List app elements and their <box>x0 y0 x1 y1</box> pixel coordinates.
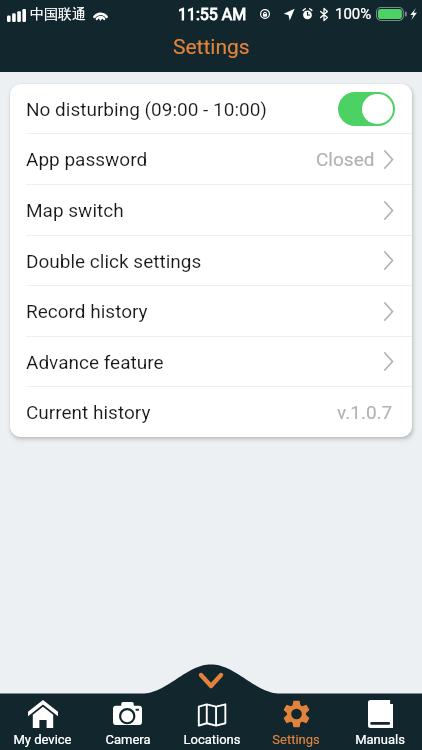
staticText: Camera <box>105 732 151 747</box>
button[interactable]: Settings <box>254 697 338 750</box>
staticText: Closed <box>316 148 375 170</box>
button[interactable]: Locations <box>170 697 254 750</box>
button[interactable]: Camera <box>85 697 170 750</box>
staticText: v.1.0.7 <box>337 401 393 423</box>
button[interactable]: My device <box>0 697 85 750</box>
button[interactable]: Map switch <box>10 185 412 235</box>
staticText: No disturbing (09:00 - 10:00) <box>26 98 267 120</box>
button[interactable]: Advance feature <box>10 337 412 386</box>
staticText: Record history <box>26 300 148 322</box>
other: Do not disturb toggle <box>338 92 395 126</box>
staticText: Manuals <box>355 732 405 747</box>
staticText: 中国联通 <box>30 6 86 24</box>
staticText: Settings <box>272 732 320 747</box>
button[interactable]: No disturbing (09:00 - 10:00) <box>10 84 412 133</box>
staticText: Locations <box>183 732 241 747</box>
staticText: My device <box>13 732 72 747</box>
staticText: Advance feature <box>26 351 164 373</box>
staticText: 11:55 AM <box>178 5 247 24</box>
staticText: Map switch <box>26 199 124 221</box>
button[interactable]: App password <box>10 134 412 184</box>
staticText: 100% <box>335 5 372 23</box>
button[interactable]: Record history <box>10 286 412 336</box>
button[interactable]: Double click settings <box>10 236 412 285</box>
button[interactable]: Current history <box>10 387 412 437</box>
button[interactable]: Manuals <box>338 697 422 750</box>
staticText: Double click settings <box>26 250 202 272</box>
staticText: Current history <box>26 401 151 423</box>
staticText: Settings <box>173 35 250 60</box>
staticText: App password <box>26 148 148 170</box>
